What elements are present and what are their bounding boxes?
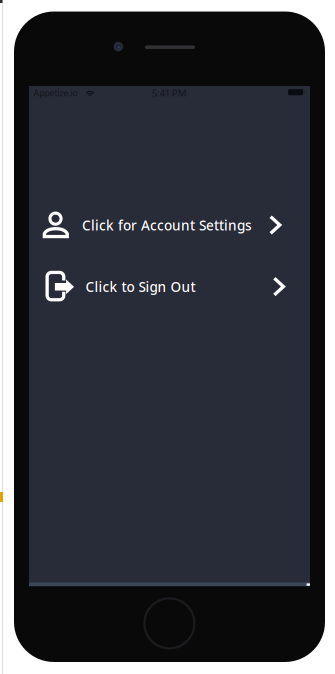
staticText: Click to Sign Out	[86, 277, 196, 296]
staticText: 5:41 PM	[152, 86, 187, 99]
button[interactable]: Click for Account Settings	[29, 202, 310, 248]
button[interactable]: Click to Sign Out	[29, 263, 310, 309]
staticText: Appetize.io	[33, 87, 77, 99]
staticText: Click for Account Settings	[82, 216, 252, 234]
